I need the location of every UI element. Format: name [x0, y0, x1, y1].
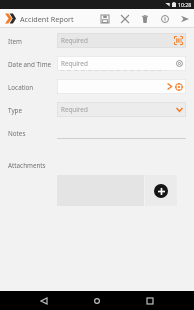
- button[interactable]: Save: [97, 11, 112, 26]
- button[interactable]: Recents: [141, 292, 159, 310]
- button[interactable]: Cancel: [117, 11, 132, 26]
- staticText: Required: [61, 105, 88, 114]
- staticText: Date and Time: [8, 60, 52, 69]
- button[interactable]: Type field: [57, 102, 186, 117]
- staticText: Notes: [8, 129, 26, 138]
- button[interactable]: Date and time field: [57, 56, 186, 71]
- button[interactable]: App logo: [3, 11, 18, 26]
- button[interactable]: Item field: [57, 33, 186, 48]
- button[interactable]: Send: [177, 11, 192, 26]
- staticText: Type: [8, 106, 23, 115]
- staticText: Required: [61, 59, 88, 68]
- button[interactable]: Notes field: [57, 125, 186, 139]
- button[interactable]: Info: [157, 11, 172, 26]
- staticText: Attachments: [8, 161, 46, 170]
- button[interactable]: Location field: [57, 79, 186, 94]
- staticText: Location: [8, 83, 34, 92]
- button[interactable]: Add attachment: [145, 175, 177, 206]
- button[interactable]: Delete: [137, 11, 152, 26]
- button[interactable]: Home: [88, 292, 106, 310]
- staticText: Required: [61, 36, 88, 45]
- button[interactable]: Back: [35, 292, 53, 310]
- staticText: Accident Report: [20, 14, 74, 24]
- staticText: Item: [8, 37, 22, 46]
- staticText: 10:28: [178, 1, 192, 8]
